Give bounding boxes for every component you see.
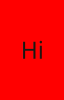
staticText: Hi — [20, 35, 43, 65]
